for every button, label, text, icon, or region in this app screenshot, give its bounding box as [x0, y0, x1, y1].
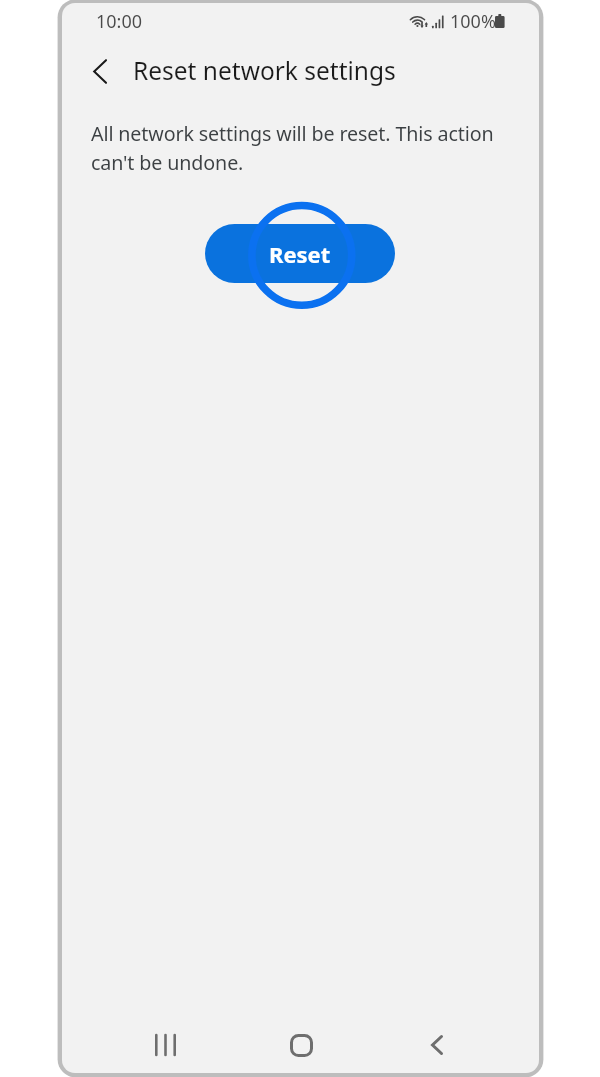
button[interactable]: Home [273, 1017, 329, 1073]
button[interactable]: Back [71, 42, 129, 100]
button[interactable]: Recents [137, 1017, 193, 1073]
staticText: All network settings will be reset. This… [91, 120, 515, 176]
staticText: 10:00 [96, 9, 143, 34]
staticText: Reset [269, 239, 331, 269]
staticText: Reset network settings [133, 54, 396, 87]
staticText: 100% [450, 9, 496, 34]
button[interactable]: Reset [205, 224, 395, 283]
button[interactable]: Back [409, 1017, 465, 1073]
